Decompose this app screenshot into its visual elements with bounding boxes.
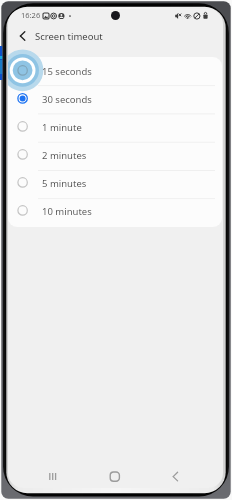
button[interactable]: 1 minute	[8, 113, 222, 141]
button[interactable]: Back	[165, 466, 187, 488]
staticText: 10 minutes	[42, 205, 92, 218]
button[interactable]: 30 seconds	[8, 85, 222, 113]
staticText: 30 seconds	[42, 93, 92, 106]
button[interactable]: 2 minutes	[8, 141, 222, 169]
button[interactable]: 5 minutes	[8, 169, 222, 197]
staticText: 1 minute	[42, 121, 82, 134]
staticText: 15 seconds	[42, 65, 92, 78]
staticText: Screen timeout	[35, 30, 103, 43]
staticText: 16:26	[21, 10, 41, 20]
button[interactable]: 15 seconds	[8, 57, 222, 85]
staticText: 2 minutes	[42, 149, 87, 162]
button[interactable]: Recents	[42, 466, 64, 488]
button[interactable]: Back	[11, 24, 35, 48]
staticText: 5 minutes	[42, 177, 87, 190]
button[interactable]: Home	[104, 466, 126, 488]
button[interactable]: 10 minutes	[8, 197, 222, 225]
